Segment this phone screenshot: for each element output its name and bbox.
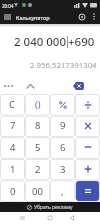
staticText: 2	[35, 163, 41, 176]
staticText: 8	[35, 119, 41, 132]
button[interactable]	[76, 10, 88, 24]
button[interactable]: 5	[25, 136, 50, 158]
staticText: Калькулятор	[16, 14, 50, 21]
button[interactable]: 0	[0, 180, 25, 202]
button[interactable]: 2	[25, 158, 50, 180]
button[interactable]	[88, 10, 100, 24]
button[interactable]: 4	[0, 136, 25, 158]
button[interactable]: 9	[50, 115, 75, 136]
button[interactable]	[16, 212, 30, 224]
button[interactable]	[75, 158, 100, 180]
button[interactable]	[24, 78, 38, 94]
button[interactable]	[75, 136, 100, 158]
button[interactable]: ()	[25, 94, 50, 115]
staticText: 20:04	[2, 3, 14, 9]
staticText: 4	[10, 141, 16, 154]
button[interactable]: Убрать рекламу	[0, 202, 100, 212]
staticText: 7	[10, 119, 16, 132]
staticText: +690	[68, 34, 95, 50]
staticText: C	[9, 98, 16, 111]
staticText: 00	[32, 185, 43, 198]
button[interactable]: 6	[50, 136, 75, 158]
button[interactable]: 8	[25, 115, 50, 136]
button[interactable]	[76, 181, 99, 201]
button[interactable]	[75, 94, 100, 115]
staticText: Убрать рекламу	[34, 204, 73, 211]
staticText: 9	[60, 119, 66, 132]
button[interactable]	[50, 94, 75, 115]
staticText: 2 956,5217391304	[30, 60, 97, 71]
staticText: 2 040 000	[14, 34, 67, 50]
button[interactable]: C	[0, 94, 25, 115]
staticText: 0	[10, 185, 16, 198]
button[interactable]: 00	[25, 180, 50, 202]
button[interactable]	[70, 78, 86, 94]
button[interactable]: ,	[50, 180, 75, 202]
staticText: 3	[60, 163, 66, 176]
button[interactable]	[0, 10, 14, 24]
button[interactable]	[75, 115, 100, 136]
staticText: 5	[35, 141, 41, 154]
button[interactable]	[0, 78, 16, 94]
staticText: 6	[60, 141, 66, 154]
button[interactable]	[43, 212, 57, 224]
staticText: ()	[35, 98, 41, 111]
staticText: 1	[10, 163, 16, 176]
button[interactable]	[66, 212, 80, 224]
button[interactable]: 3	[50, 158, 75, 180]
staticText: ,	[61, 185, 64, 198]
button[interactable]: 7	[0, 115, 25, 136]
button[interactable]: 1	[0, 158, 25, 180]
